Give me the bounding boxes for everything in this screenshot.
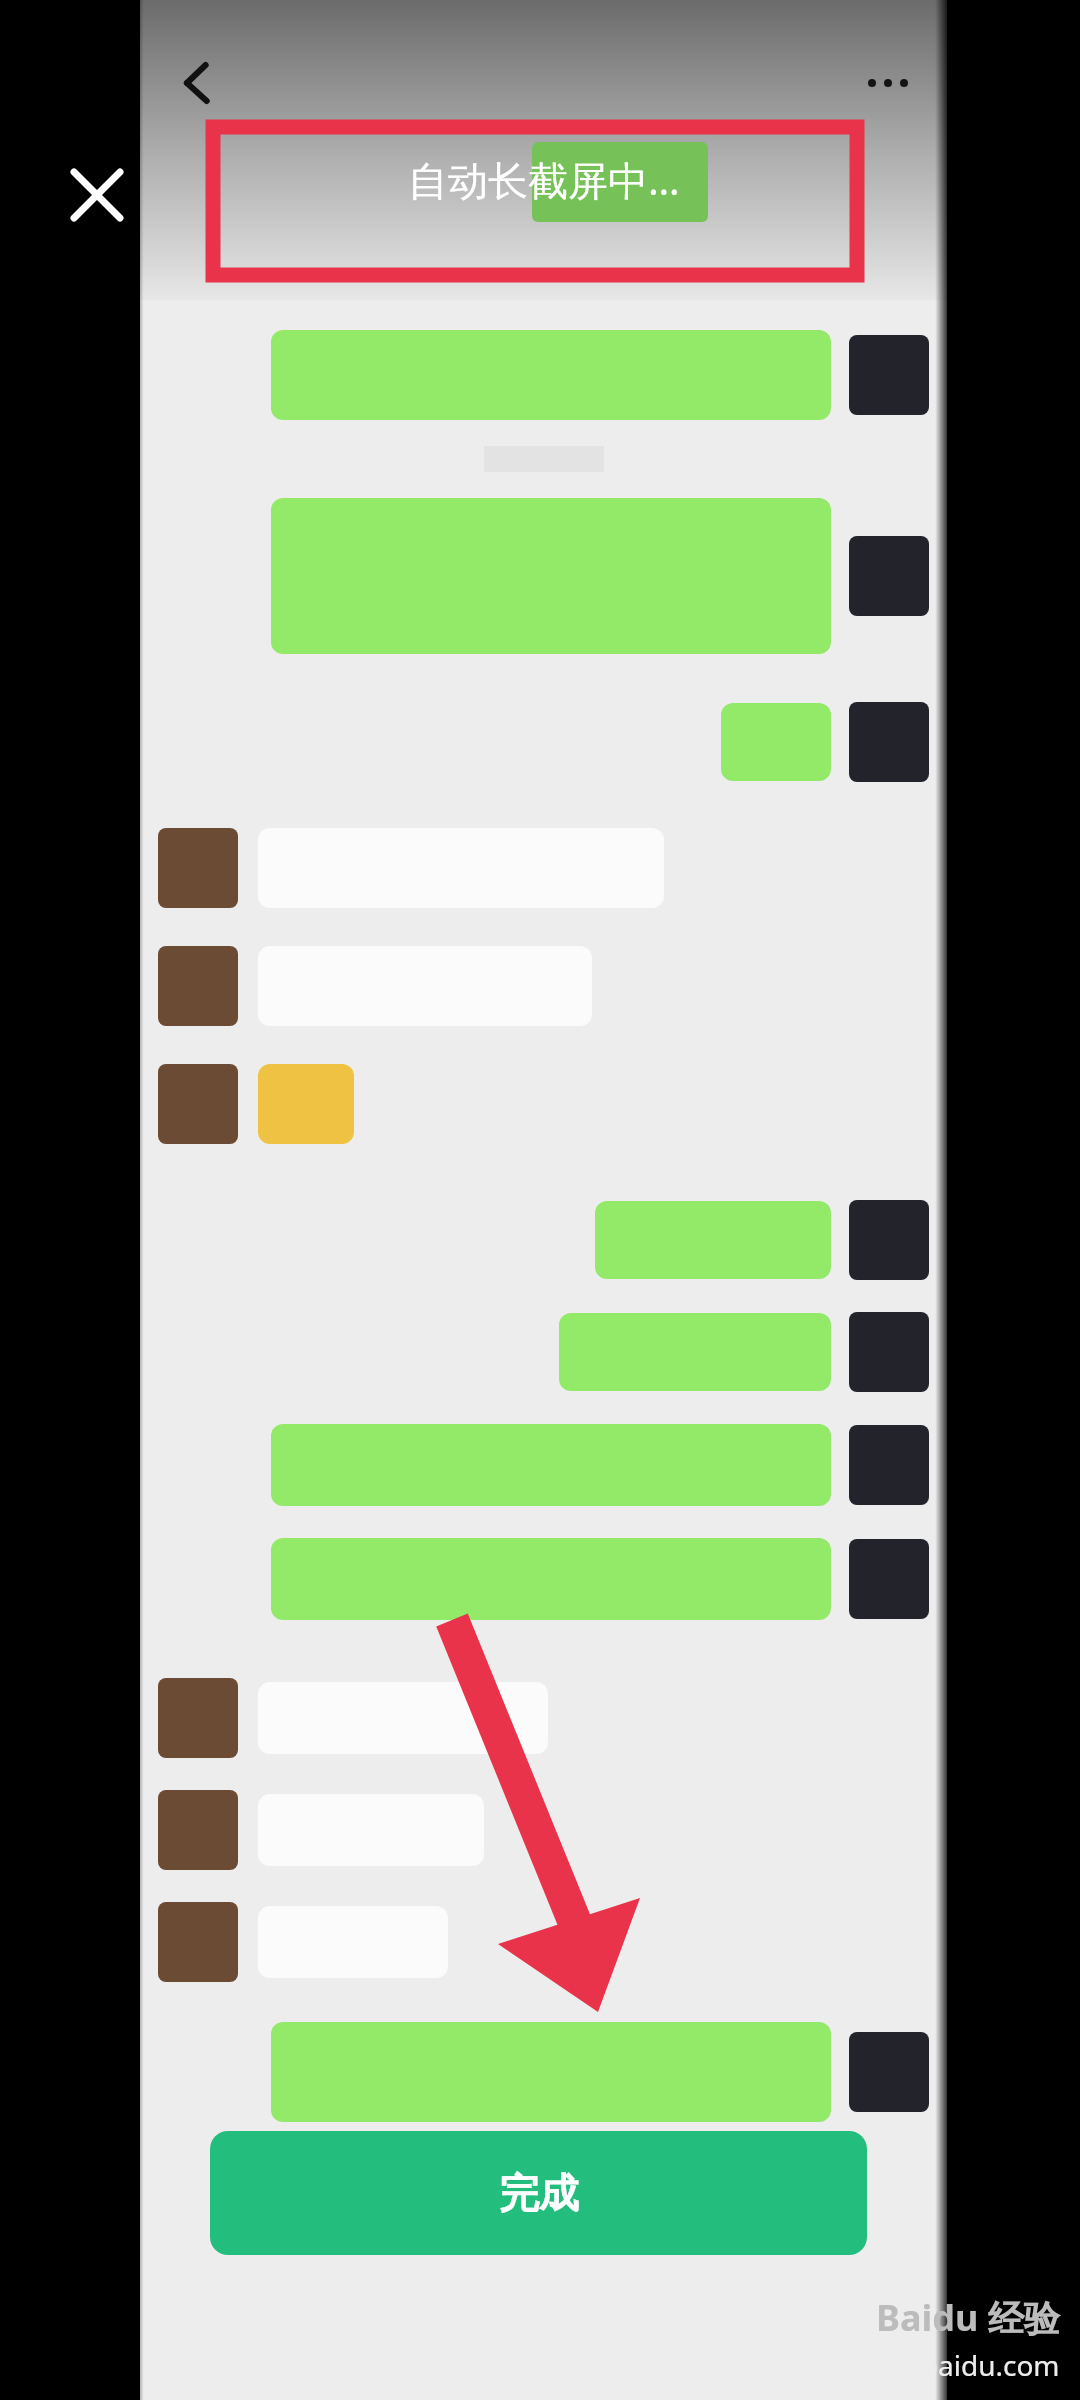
button[interactable]: Back — [164, 50, 230, 116]
button[interactable]: More options — [855, 50, 921, 116]
button[interactable]: 完成 — [210, 2131, 867, 2255]
staticText: 自动长截屏中… — [408, 152, 680, 207]
staticText: Baidu 经验 — [876, 2293, 1060, 2342]
staticText: 完成 — [499, 2168, 579, 2218]
staticText: jingyan.baidu.com — [817, 2346, 1060, 2384]
button[interactable]: Close — [60, 158, 134, 232]
